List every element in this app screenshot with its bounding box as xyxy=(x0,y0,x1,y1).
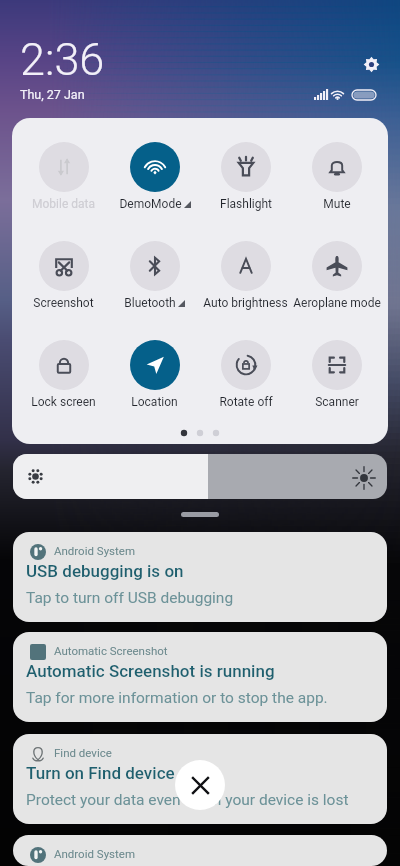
staticText: Thu, 27 Jan xyxy=(20,87,85,102)
button[interactable]: Flashlight xyxy=(200,118,291,211)
staticText: Turn on Find device xyxy=(26,763,175,783)
staticText: Aeroplane mode xyxy=(293,296,381,310)
staticText: Location xyxy=(131,395,178,409)
staticText: Mute xyxy=(323,197,351,211)
button[interactable] xyxy=(13,454,387,499)
staticText: Android System xyxy=(54,847,135,860)
button[interactable]: Aeroplane mode xyxy=(291,217,382,310)
staticText: Scanner xyxy=(315,395,359,409)
staticText: Tap for more information or to stop the … xyxy=(26,689,328,707)
staticText: Auto brightness xyxy=(203,296,288,310)
button[interactable]: Auto brightness xyxy=(200,217,291,310)
button[interactable]: Lock screen xyxy=(18,316,109,409)
button[interactable]: DemoMode xyxy=(109,118,200,211)
staticText: DemoMode xyxy=(119,197,182,211)
button[interactable]: Find device xyxy=(13,734,387,824)
staticText: Lock screen xyxy=(31,395,96,409)
staticText: Bluetooth xyxy=(124,296,176,310)
staticText: Find device xyxy=(54,746,112,759)
button[interactable]: Location xyxy=(109,316,200,409)
staticText: Screenshot xyxy=(33,296,94,310)
button[interactable]: Automatic Screenshot xyxy=(13,632,387,722)
button[interactable]: Android System xyxy=(13,835,387,866)
button[interactable]: Bluetooth xyxy=(109,217,200,310)
staticText: Automatic Screenshot is running xyxy=(26,661,275,681)
staticText: Flashlight xyxy=(220,197,272,211)
button[interactable]: Mute xyxy=(291,118,382,211)
staticText: USB debugging is on xyxy=(26,561,184,581)
staticText: Protect your data even when your device … xyxy=(26,791,349,809)
staticText: Automatic Screenshot xyxy=(54,644,168,657)
button[interactable]: Settings xyxy=(357,50,386,79)
staticText: 2:36 xyxy=(20,33,105,86)
button[interactable]: Scanner xyxy=(291,316,382,409)
button[interactable]: Screenshot xyxy=(18,217,109,310)
button[interactable]: Rotate off xyxy=(200,316,291,409)
staticText: Tap to turn off USB debugging xyxy=(26,589,234,607)
button[interactable]: Android System xyxy=(13,532,387,622)
staticText: Android System xyxy=(54,544,135,557)
button[interactable]: Mobile data xyxy=(18,118,109,211)
staticText: Rotate off xyxy=(219,395,273,409)
button[interactable]: Close notifications xyxy=(175,760,225,810)
staticText: Mobile data xyxy=(32,197,95,211)
